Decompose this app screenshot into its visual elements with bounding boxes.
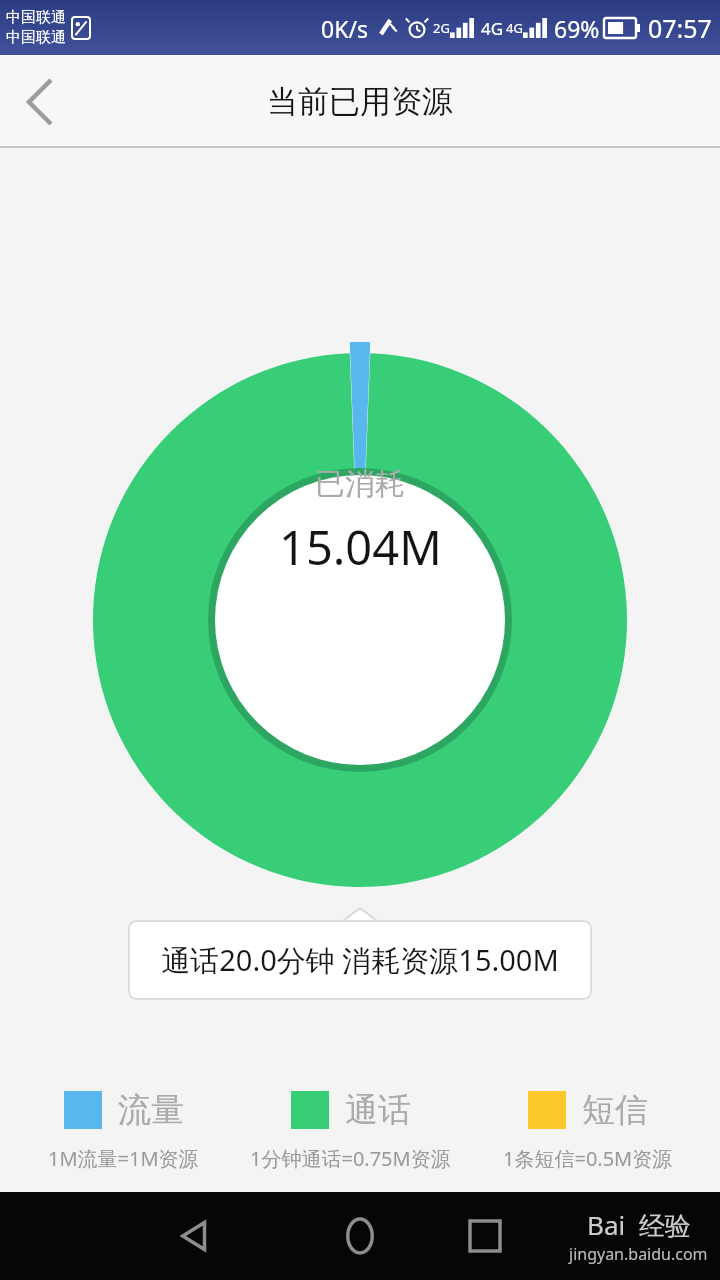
staticText: 当前已用资源 [267,82,453,121]
staticText: 中国联通 [6,8,66,27]
button[interactable]: 通话 [246,1089,455,1172]
staticText: 通话20.0分钟 消耗资源15.00M [161,940,559,980]
button[interactable]: 通话20.0分钟 消耗资源15.00M [128,920,592,1000]
staticText: 1条短信=0.5M资源 [503,1145,673,1172]
staticText: 07:57 [648,11,712,45]
staticText: 中国联通 [6,28,66,47]
button[interactable]: Back [160,1201,230,1271]
staticText: 15.04M [279,515,442,579]
staticText: 通话 [345,1089,411,1131]
staticText: 4G [481,17,504,40]
staticText: Bai 经验 [587,1207,691,1243]
staticText: 已消耗 [315,465,405,503]
button[interactable]: Back [0,55,80,148]
staticText: 0K/s [321,13,368,44]
staticText: 流量 [118,1089,184,1131]
button[interactable]: 短信 [499,1089,677,1172]
staticText: 短信 [582,1089,648,1131]
button[interactable]: 流量 [44,1089,203,1172]
staticText: 4G [506,19,523,37]
staticText: 1分钟通话=0.75M资源 [250,1145,451,1172]
staticText: 1M流量=1M资源 [48,1145,199,1172]
staticText: 69% [554,13,600,44]
button[interactable]: Recent apps [450,1201,520,1271]
button[interactable]: Home [325,1201,395,1271]
staticText: 2G [433,19,450,37]
staticText: jingyan.baidu.com [569,1243,708,1265]
